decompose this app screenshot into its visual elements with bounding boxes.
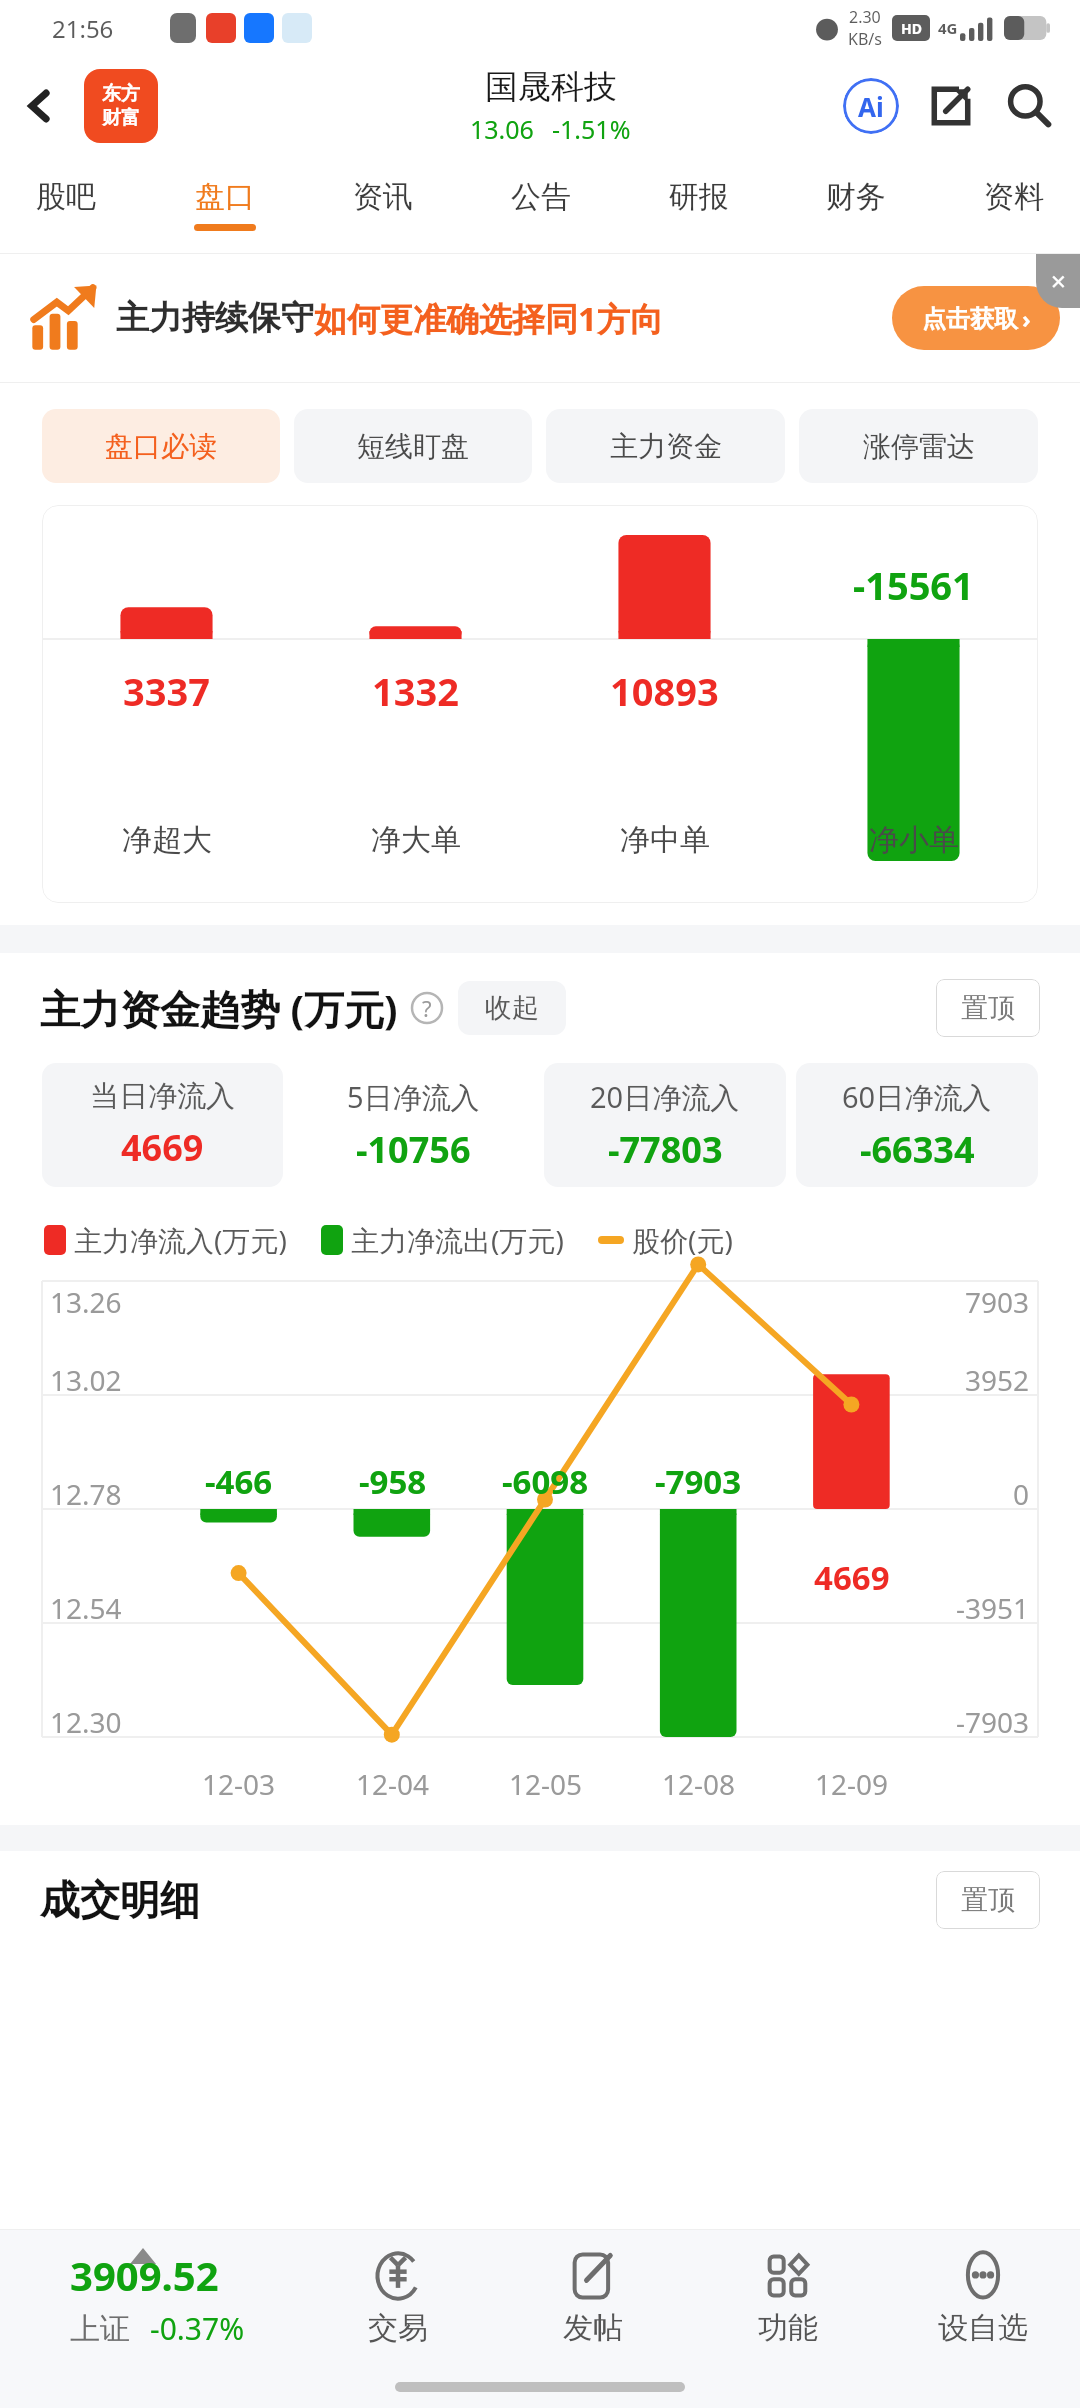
staticText: 如何更准确选择同1方向 xyxy=(314,296,663,341)
staticText: -1.51% xyxy=(552,112,631,146)
staticText: 4669 xyxy=(814,1555,890,1600)
staticText: 置顶 xyxy=(961,1883,1015,1917)
staticText: 7903 xyxy=(965,1283,1030,1321)
staticText: 4G xyxy=(938,18,958,38)
button[interactable]: 60日净流入 xyxy=(796,1063,1038,1187)
button[interactable]: 交易 xyxy=(300,2230,495,2366)
staticText: 盘口 xyxy=(195,178,255,216)
staticText: 上证 xyxy=(70,2310,130,2348)
staticText: 成交明细 xyxy=(40,1875,200,1925)
staticText: 10893 xyxy=(610,665,719,717)
staticText: ✕ xyxy=(1050,270,1067,293)
staticText: 主力净流入(万元) xyxy=(74,1221,287,1259)
staticText: -7903 xyxy=(655,1459,742,1504)
button[interactable]: 当日净流入 xyxy=(42,1063,283,1187)
staticText: 公告 xyxy=(511,178,571,216)
staticText: 主力净流出(万元) xyxy=(351,1221,564,1259)
button[interactable]: Back xyxy=(8,74,72,138)
button[interactable]: 盘口 xyxy=(194,156,256,231)
button[interactable]: 点击获取 xyxy=(892,286,1060,350)
staticText: 3337 xyxy=(123,665,210,717)
staticText: 5日净流入 xyxy=(347,1077,480,1117)
staticText: 股吧 xyxy=(36,178,96,216)
staticText: Ai xyxy=(858,89,884,124)
staticText: -10756 xyxy=(356,1125,471,1174)
staticText: 置顶 xyxy=(961,991,1015,1025)
staticText: 12.30 xyxy=(50,1703,122,1741)
button[interactable]: East Money xyxy=(84,69,158,143)
staticText: 13.02 xyxy=(50,1361,122,1399)
button[interactable]: 研报 xyxy=(669,156,729,224)
button[interactable]: 资讯 xyxy=(353,156,413,224)
staticText: 主力资金趋势 (万元) xyxy=(40,981,398,1036)
staticText: -466 xyxy=(205,1459,273,1504)
staticText: -958 xyxy=(359,1459,427,1504)
staticText: › xyxy=(1022,302,1031,335)
staticText: 资讯 xyxy=(353,178,413,216)
staticText: 12.78 xyxy=(50,1475,122,1513)
staticText: 发帖 xyxy=(563,2309,623,2347)
staticText: 主力资金 xyxy=(610,429,722,464)
button[interactable]: 盘口必读 xyxy=(42,409,280,483)
staticText: 交易 xyxy=(368,2309,428,2347)
button[interactable]: Share xyxy=(918,73,984,139)
staticText: 13.06 xyxy=(470,112,534,146)
staticText: 财富 xyxy=(102,106,140,130)
staticText: 净超大 xyxy=(122,821,212,859)
button[interactable]: 短线盯盘 xyxy=(294,409,532,483)
button[interactable]: 公告 xyxy=(511,156,571,224)
staticText: 收起 xyxy=(485,991,539,1025)
staticText: 3952 xyxy=(965,1361,1030,1399)
staticText: 净大单 xyxy=(371,821,461,859)
button[interactable]: AI assistant xyxy=(838,73,904,139)
staticText: 当日净流入 xyxy=(90,1078,235,1115)
button[interactable]: 3337 xyxy=(42,505,1038,903)
staticText: 短线盯盘 xyxy=(357,429,469,464)
button[interactable]: 20日净流入 xyxy=(544,1063,786,1187)
staticText: 主力持续保守 xyxy=(116,297,314,339)
staticText: 20日净流入 xyxy=(590,1077,740,1117)
button[interactable]: 主力资金 xyxy=(546,409,785,483)
staticText: 净中单 xyxy=(620,821,710,859)
button[interactable]: 置顶 xyxy=(936,979,1040,1037)
staticText: 股价(元) xyxy=(632,1221,733,1259)
staticText: 3909.52 xyxy=(70,2248,219,2302)
button[interactable]: 置顶 xyxy=(936,1871,1040,1929)
staticText: 点击获取 xyxy=(922,304,1018,334)
staticText: 设自选 xyxy=(938,2309,1028,2347)
button[interactable]: 发帖 xyxy=(495,2230,690,2366)
staticText: -3951 xyxy=(956,1589,1030,1627)
staticText: 12-08 xyxy=(662,1765,736,1803)
staticText: 0 xyxy=(1013,1475,1030,1513)
button[interactable]: 功能 xyxy=(690,2230,885,2366)
staticText: 1332 xyxy=(372,665,459,717)
button[interactable]: 5日净流入 xyxy=(293,1063,534,1187)
staticText: 12.54 xyxy=(50,1589,122,1627)
staticText: -15561 xyxy=(853,559,974,611)
staticText: 21:56 xyxy=(52,12,114,45)
button[interactable]: 涨停雷达 xyxy=(799,409,1038,483)
button[interactable]: 资料 xyxy=(984,156,1044,224)
staticText: -6098 xyxy=(502,1459,589,1504)
staticText: 资料 xyxy=(984,178,1044,216)
staticText: 涨停雷达 xyxy=(863,429,975,464)
staticText: 财务 xyxy=(826,178,886,216)
button[interactable]: 设自选 xyxy=(885,2230,1080,2366)
staticText: KB/s xyxy=(848,28,882,50)
button[interactable]: 3909.52 xyxy=(0,2230,300,2366)
staticText: -66334 xyxy=(860,1125,975,1174)
button[interactable]: 股吧 xyxy=(36,156,96,224)
button[interactable]: Help xyxy=(410,991,444,1025)
staticText: 净小单 xyxy=(869,821,959,859)
staticText: -77803 xyxy=(608,1125,723,1174)
button[interactable]: 主力持续保守 xyxy=(0,254,1080,382)
button[interactable]: Close xyxy=(1036,254,1080,308)
staticText: HD xyxy=(901,19,922,38)
button[interactable]: 财务 xyxy=(826,156,886,224)
staticText: 盘口必读 xyxy=(105,429,217,464)
button[interactable]: Search xyxy=(996,73,1062,139)
staticText: 12-03 xyxy=(202,1765,276,1803)
button[interactable]: 收起 xyxy=(458,981,566,1035)
staticText: 东方 xyxy=(102,82,140,106)
staticText: 国晟科技 xyxy=(485,66,617,108)
